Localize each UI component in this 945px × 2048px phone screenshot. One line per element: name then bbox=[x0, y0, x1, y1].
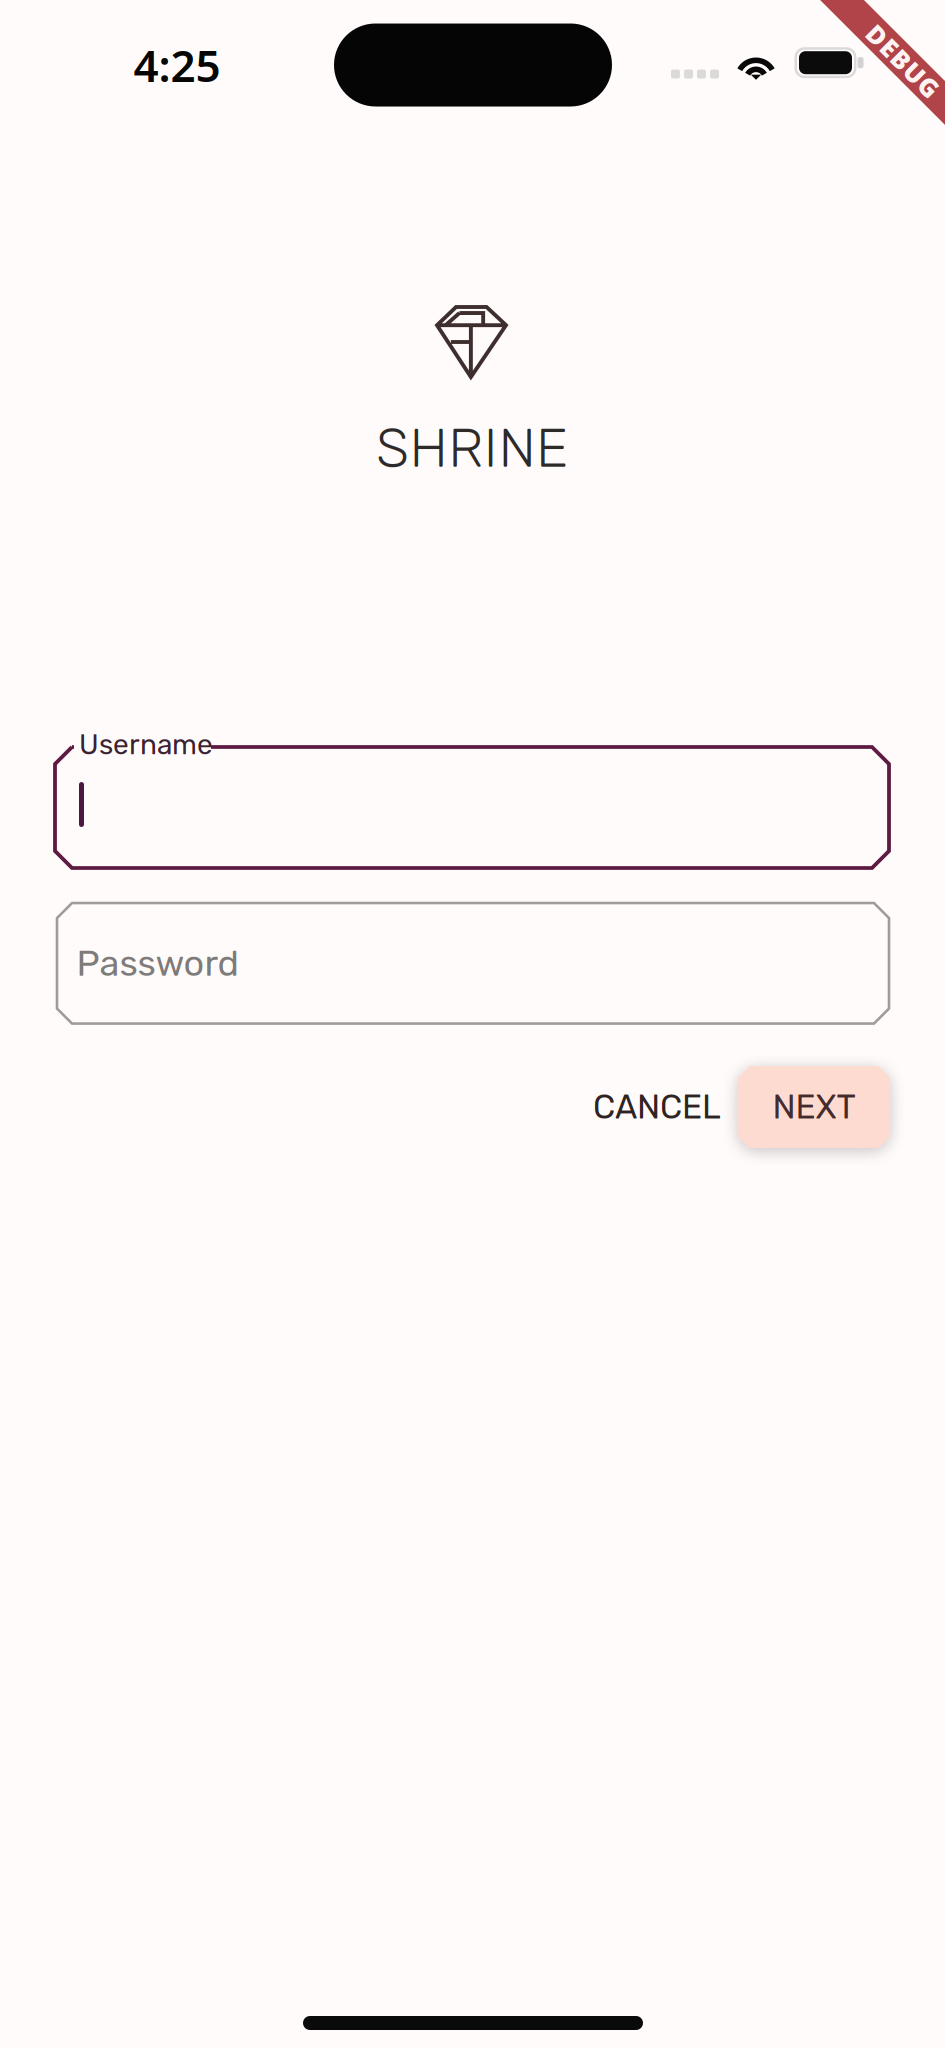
button[interactable]: NEXT bbox=[738, 1066, 890, 1148]
staticText: Password bbox=[76, 942, 238, 985]
staticText: DEBUG bbox=[857, 44, 945, 78]
button[interactable]: CANCEL bbox=[566, 1065, 748, 1149]
staticText: NEXT bbox=[772, 1087, 855, 1127]
staticText: CANCEL bbox=[593, 1087, 721, 1127]
button[interactable]: Username bbox=[53, 732, 891, 869]
staticText: SHRINE bbox=[376, 416, 568, 480]
staticText: 4:25 bbox=[133, 36, 220, 94]
staticText: Username bbox=[79, 728, 213, 761]
button[interactable]: Password bbox=[55, 901, 891, 1025]
